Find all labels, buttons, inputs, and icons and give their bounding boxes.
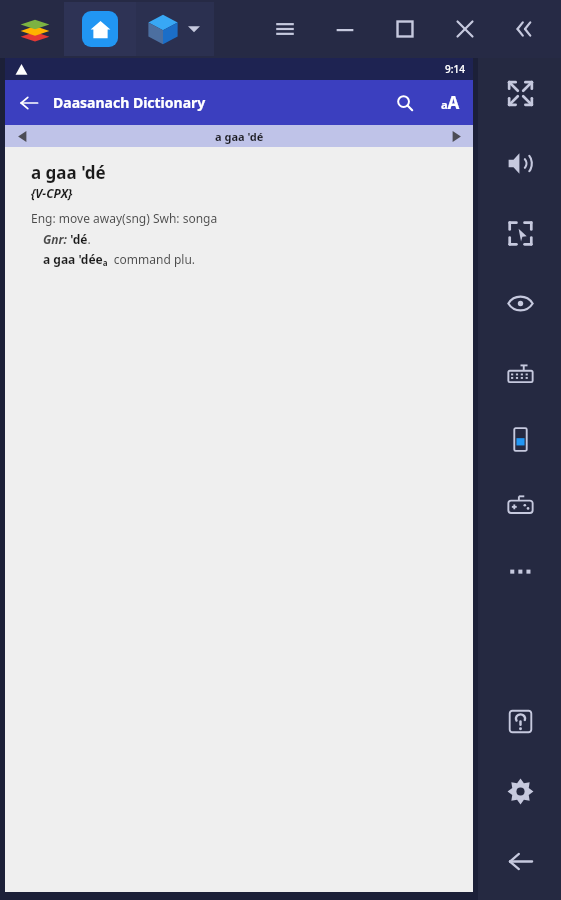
button[interactable]: Gamepad (492, 488, 548, 522)
button[interactable]: Volume (492, 146, 548, 180)
button[interactable]: Keyboard (492, 356, 548, 390)
staticText: a gaa 'déea command plu. (43, 251, 196, 269)
staticText: a gaa 'dé (215, 129, 264, 144)
button[interactable]: Back (5, 80, 53, 125)
button[interactable]: Close (435, 0, 495, 58)
staticText: {V-CPX} (31, 185, 73, 201)
staticText: aA (441, 91, 460, 114)
button[interactable]: Maximize (375, 0, 435, 58)
button[interactable]: Help (492, 704, 548, 738)
button[interactable]: Text size (427, 80, 473, 125)
staticText: Eng: move away(sng) Swh: songa (31, 210, 218, 226)
staticText: Daasanach Dictionary (53, 93, 206, 112)
button[interactable]: Search (383, 80, 427, 125)
button[interactable]: Fullscreen (492, 76, 548, 110)
button[interactable]: Eye (492, 286, 548, 320)
button[interactable]: Settings (492, 774, 548, 808)
button[interactable]: BlueStacks (6, 3, 64, 55)
button[interactable]: More (492, 554, 548, 588)
staticText: a gaa 'dé (31, 161, 106, 184)
button[interactable]: Minimize (315, 0, 375, 58)
button[interactable]: Back (492, 844, 548, 878)
button[interactable]: App tab (136, 2, 214, 56)
button[interactable]: Rotate screen (492, 422, 548, 456)
button[interactable]: Previous entry (5, 125, 39, 147)
button[interactable]: Collapse (495, 0, 555, 58)
button[interactable]: Next entry (439, 125, 473, 147)
staticText: Gnr: 'dé. (43, 231, 91, 247)
staticText: 9:14 (445, 62, 465, 76)
button[interactable]: Menu (255, 0, 315, 58)
button[interactable]: Home (64, 2, 136, 56)
button[interactable]: Screenshot (492, 216, 548, 250)
